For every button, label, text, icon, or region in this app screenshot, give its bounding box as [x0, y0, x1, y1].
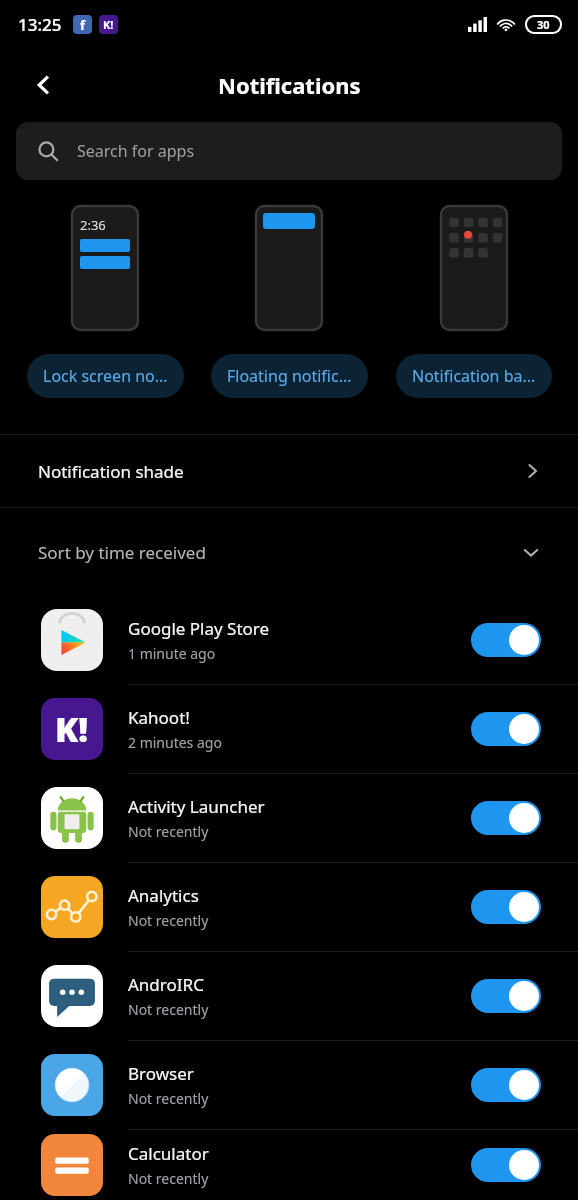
- staticText: Notifications: [218, 70, 361, 100]
- staticText: 30: [537, 17, 550, 32]
- button[interactable]: Activity Launcher: [0, 774, 578, 862]
- staticText: Google Play Store: [128, 617, 270, 640]
- button[interactable]: Floating notific...: [209, 206, 369, 398]
- staticText: Analytics: [128, 884, 199, 907]
- button[interactable]: Analytics: [0, 863, 578, 951]
- staticText: Notification shade: [38, 460, 184, 483]
- staticText: Activity Launcher: [128, 795, 265, 818]
- staticText: 2 minutes ago: [128, 733, 222, 752]
- button[interactable]: Search for apps: [16, 122, 562, 180]
- button[interactable]: Google Play Store: [0, 596, 578, 684]
- button[interactable]: 2:36: [25, 206, 185, 398]
- button[interactable]: Toggle notifications: [471, 1068, 541, 1102]
- staticText: 2:36: [80, 216, 106, 234]
- staticText: Not recently: [128, 911, 209, 930]
- button[interactable]: K!: [0, 685, 578, 773]
- button[interactable]: Toggle notifications: [471, 801, 541, 835]
- staticText: Notification ba...: [412, 365, 536, 387]
- staticText: Floating notific...: [227, 365, 352, 387]
- button[interactable]: Toggle notifications: [471, 1148, 541, 1182]
- staticText: Not recently: [128, 1000, 209, 1019]
- staticText: Not recently: [128, 1169, 209, 1188]
- staticText: Lock screen no...: [43, 365, 168, 387]
- button[interactable]: Back: [16, 57, 72, 113]
- staticText: Kahoot!: [128, 706, 190, 729]
- staticText: Sort by time received: [38, 541, 206, 564]
- staticText: 13:25: [18, 13, 62, 36]
- staticText: Search for apps: [77, 140, 195, 162]
- staticText: AndroIRC: [128, 973, 204, 996]
- staticText: Not recently: [128, 1089, 209, 1108]
- staticText: 1 minute ago: [128, 644, 216, 663]
- staticText: K!: [55, 706, 89, 752]
- staticText: f: [80, 16, 86, 34]
- button[interactable]: Notification shade: [0, 435, 578, 507]
- button[interactable]: Browser: [0, 1041, 578, 1129]
- button[interactable]: Toggle notifications: [471, 623, 541, 657]
- staticText: K!: [103, 17, 114, 32]
- staticText: Browser: [128, 1062, 194, 1085]
- button[interactable]: Toggle notifications: [471, 890, 541, 924]
- staticText: Not recently: [128, 822, 209, 841]
- button[interactable]: Notification ba...: [394, 206, 554, 398]
- button[interactable]: Toggle notifications: [471, 712, 541, 746]
- staticText: Calculator: [128, 1142, 209, 1165]
- button[interactable]: Calculator: [0, 1130, 578, 1200]
- button[interactable]: Sort by time received: [0, 508, 578, 596]
- button[interactable]: Toggle notifications: [471, 979, 541, 1013]
- button[interactable]: AndroIRC: [0, 952, 578, 1040]
